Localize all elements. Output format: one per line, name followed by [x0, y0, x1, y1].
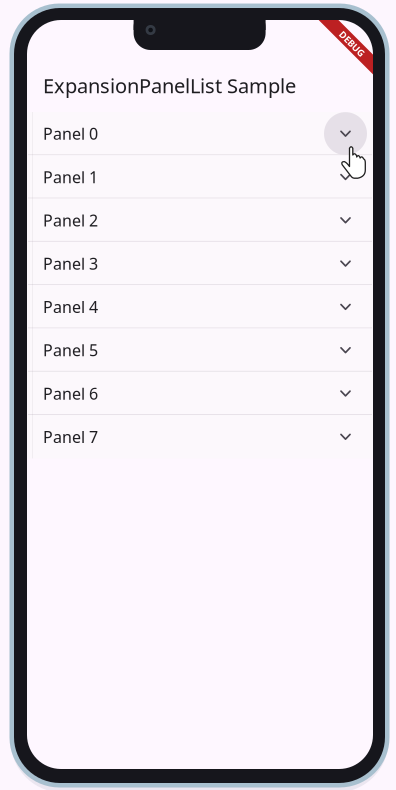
button[interactable]: Panel 4 — [27, 285, 373, 328]
button[interactable]: Panel 5 — [27, 328, 373, 372]
staticText: Panel 7 — [43, 426, 98, 447]
staticText: Panel 3 — [43, 253, 98, 274]
staticText: Panel 1 — [43, 166, 98, 187]
button[interactable]: Panel 0 — [27, 112, 373, 155]
staticText: DEBUG — [338, 33, 370, 46]
staticText: Panel 4 — [43, 296, 98, 317]
staticText: Panel 2 — [43, 210, 98, 231]
staticText: ExpansionPanelList Sample — [43, 72, 296, 99]
staticText: Panel 6 — [43, 383, 98, 404]
button[interactable]: Panel 3 — [27, 242, 373, 285]
staticText: Panel 5 — [43, 339, 98, 361]
staticText: Panel 0 — [43, 123, 98, 144]
button[interactable]: Panel 2 — [27, 199, 373, 242]
button[interactable]: Panel 7 — [27, 415, 373, 458]
button[interactable]: Panel 6 — [27, 372, 373, 415]
button[interactable]: Panel 1 — [27, 155, 373, 199]
